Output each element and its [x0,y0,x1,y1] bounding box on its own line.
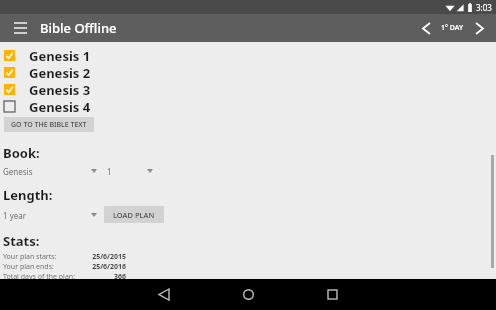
button[interactable]: 1 year [0,208,100,222]
button[interactable]: Recent apps [312,279,352,310]
button[interactable]: 1 [104,164,156,178]
button[interactable]: Previous day [415,17,437,39]
button[interactable]: Genesis 3 [0,81,496,98]
staticText: Genesis [3,166,33,177]
staticText: Genesis 1 [29,47,91,64]
staticText: 1° DAY [441,23,464,33]
button[interactable]: Open navigation drawer [10,18,30,38]
staticText: Length: [3,186,53,204]
button[interactable]: 1° DAY [441,23,464,33]
button[interactable]: Genesis 2 [0,64,496,81]
staticText: 25/6/2016 [80,262,126,272]
staticText: 1 [107,166,112,177]
button[interactable]: Home [228,279,268,310]
staticText: Book: [3,144,40,162]
staticText: Genesis 3 [29,81,91,98]
button[interactable]: Back [144,279,184,310]
staticText: Total days of the plan: [3,272,76,279]
staticText: Genesis 4 [29,98,91,115]
staticText: LOAD PLAN [113,210,155,220]
button[interactable]: Genesis [0,164,100,178]
staticText: 366 [80,272,126,279]
staticText: GO TO THE BIBLE TEXT [11,120,87,130]
button[interactable]: Genesis 1 [0,47,496,64]
staticText: Stats: [3,232,40,250]
staticText: Your plan ends: [3,262,54,272]
staticText: 1 year [3,210,27,221]
button[interactable]: LOAD PLAN [104,206,164,223]
staticText: Your plan starts: [3,252,57,262]
staticText: 3:03 [476,2,492,13]
button[interactable]: Next day [468,17,490,39]
button[interactable]: Genesis 4 [0,98,496,115]
staticText: Bible Offline [40,19,117,37]
staticText: Genesis 2 [29,64,91,81]
button[interactable]: GO TO THE BIBLE TEXT [4,117,94,132]
staticText: 25/6/2015 [80,252,126,262]
